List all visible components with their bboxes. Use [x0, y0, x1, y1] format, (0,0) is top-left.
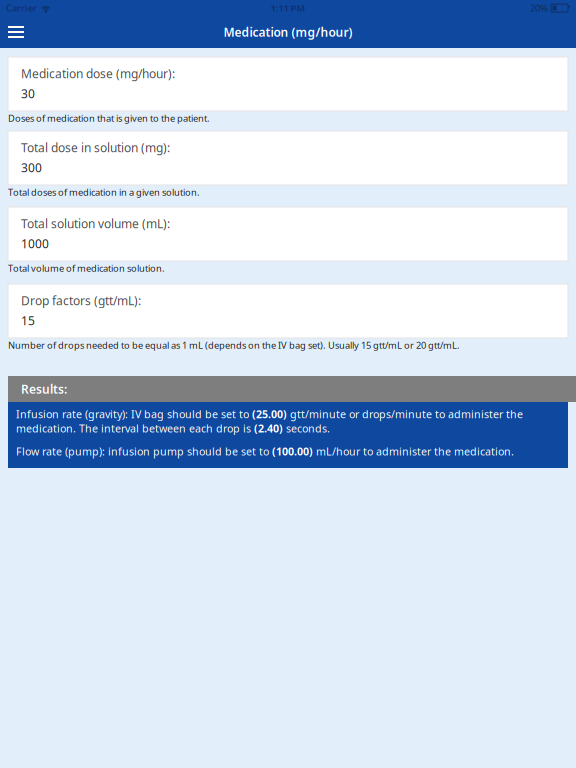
- staticText: Total doses of medication in a given sol…: [8, 186, 200, 198]
- staticText: 1:11 PM: [270, 2, 305, 14]
- staticText: 300: [21, 159, 42, 175]
- staticText: 20%: [530, 2, 548, 14]
- staticText: Total dose in solution (mg):: [21, 139, 170, 155]
- staticText: Carrier: [6, 2, 37, 14]
- staticText: Total solution volume (mL):: [21, 215, 170, 231]
- staticText: Medication dose (mg/hour):: [21, 65, 175, 81]
- staticText: 15: [21, 312, 35, 328]
- staticText: Total volume of medication solution.: [8, 262, 165, 274]
- staticText: Flow rate (pump): infusion pump should b…: [16, 444, 514, 458]
- staticText: Results:: [21, 381, 67, 397]
- staticText: Drop factors (gtt/mL):: [21, 292, 141, 308]
- button[interactable]: Menu: [0, 16, 32, 48]
- staticText: Medication (mg/hour): [223, 24, 352, 40]
- staticText: Number of drops needed to be equal as 1 …: [8, 339, 460, 351]
- staticText: 1000: [21, 235, 49, 251]
- staticText: Infusion rate (gravity): IV bag should b…: [16, 407, 523, 435]
- staticText: Doses of medication that is given to the…: [8, 112, 210, 124]
- staticText: 30: [21, 85, 35, 101]
